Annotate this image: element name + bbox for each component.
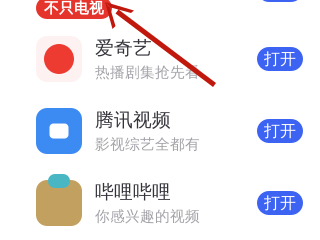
staticText: 哔哩哔哩 <box>95 180 171 203</box>
staticText: 热播剧集抢先看 <box>95 63 200 81</box>
staticText: 影视综艺全都有 <box>95 135 200 153</box>
button[interactable]: 爱奇艺 <box>0 23 320 95</box>
staticText: 不只电视 <box>44 0 104 17</box>
staticText: 打开 <box>264 193 296 213</box>
staticText: 腾讯视频 <box>95 108 171 131</box>
staticText: 你感兴趣的视频 <box>95 207 200 225</box>
button[interactable]: 打开 <box>0 0 303 2</box>
staticText: 打开 <box>264 49 296 69</box>
button[interactable]: 哔哩哔哩 <box>0 167 320 239</box>
button[interactable]: 腾讯视频 <box>0 95 320 167</box>
staticText: 爱奇艺 <box>95 36 152 59</box>
staticText: 打开 <box>264 121 296 141</box>
